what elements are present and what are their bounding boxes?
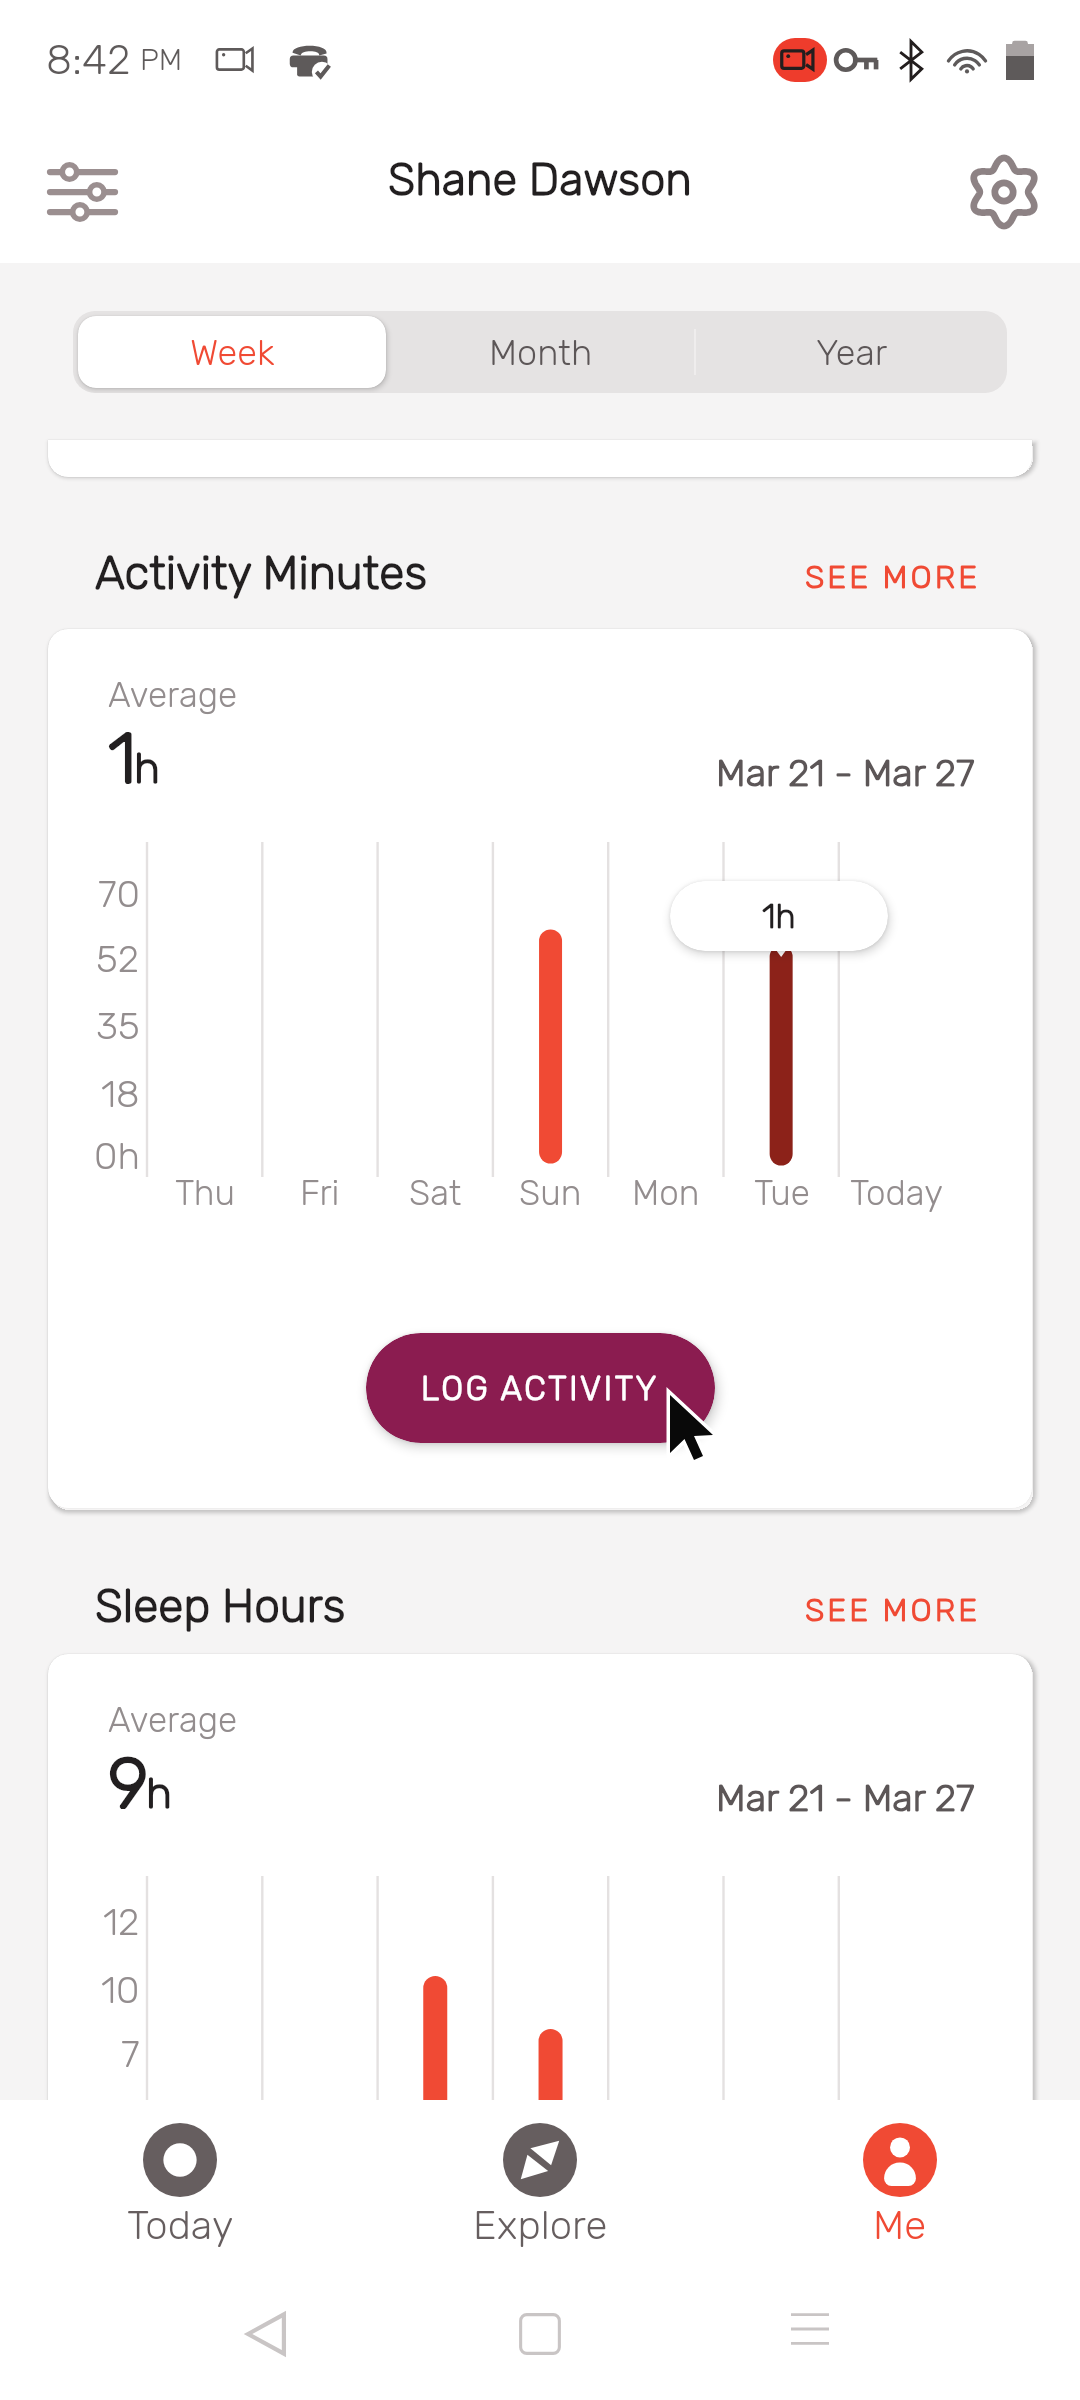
staticText: h [134, 742, 161, 794]
staticText: Explore [473, 2202, 608, 2249]
staticText: Year [816, 331, 888, 374]
button[interactable]: Settings [949, 137, 1059, 247]
staticText: 1h [762, 896, 796, 936]
button[interactable]: Back [238, 2306, 294, 2362]
staticText: SEE MORE [805, 558, 981, 596]
staticText: Tue [754, 1172, 810, 1213]
staticText: 0h [94, 1133, 140, 1178]
staticText: 9 [108, 1742, 149, 1826]
staticText: Mar 21 - Mar 27 [716, 750, 975, 795]
staticText: 52 [96, 936, 140, 981]
staticText: 10 [101, 1967, 140, 2012]
button[interactable] [73, 311, 385, 393]
button[interactable]: Month [385, 311, 696, 393]
staticText: 70 [98, 871, 140, 916]
button[interactable]: Explore [360, 2100, 720, 2280]
button[interactable]: SEE MORE [805, 558, 981, 596]
button[interactable]: Today [0, 2100, 360, 2280]
button[interactable]: Filters [27, 137, 137, 247]
staticText: h [146, 1767, 173, 1819]
staticText: 18 [101, 1071, 140, 1116]
staticText: SEE MORE [805, 1591, 981, 1629]
button[interactable]: Me [720, 2100, 1080, 2280]
staticText: 1 [108, 717, 137, 801]
staticText: 35 [96, 1003, 140, 1048]
button[interactable]: LOG ACTIVITY [366, 1333, 715, 1443]
staticText: Average [108, 674, 238, 715]
button[interactable]: Week [78, 316, 386, 388]
staticText: Today [850, 1172, 943, 1213]
staticText: Thu [175, 1172, 235, 1213]
staticText: Month [489, 331, 593, 374]
button[interactable]: Home [518, 2312, 562, 2356]
button[interactable]: Year [696, 311, 1007, 393]
staticText: Shane Dawson [388, 153, 692, 206]
staticText: Sat [409, 1172, 462, 1213]
staticText: 8:42 [46, 35, 131, 85]
staticText: PM [140, 42, 183, 78]
staticText: 7 [121, 2031, 140, 2076]
staticText: Week [190, 331, 275, 374]
button[interactable]: Recent apps [791, 2310, 829, 2348]
staticText: Fri [300, 1172, 340, 1213]
staticText: Today [127, 2202, 234, 2249]
button[interactable]: SEE MORE [805, 1591, 981, 1629]
staticText: Mon [632, 1172, 700, 1213]
staticText: Average [108, 1699, 238, 1740]
staticText: LOG ACTIVITY [421, 1369, 660, 1408]
staticText: Sun [519, 1172, 582, 1213]
staticText: Mar 21 - Mar 27 [716, 1775, 975, 1820]
staticText: Activity Minutes [95, 546, 428, 601]
staticText: Me [873, 2202, 927, 2249]
staticText: 12 [103, 1899, 140, 1944]
staticText: Sleep Hours [95, 1579, 346, 1634]
